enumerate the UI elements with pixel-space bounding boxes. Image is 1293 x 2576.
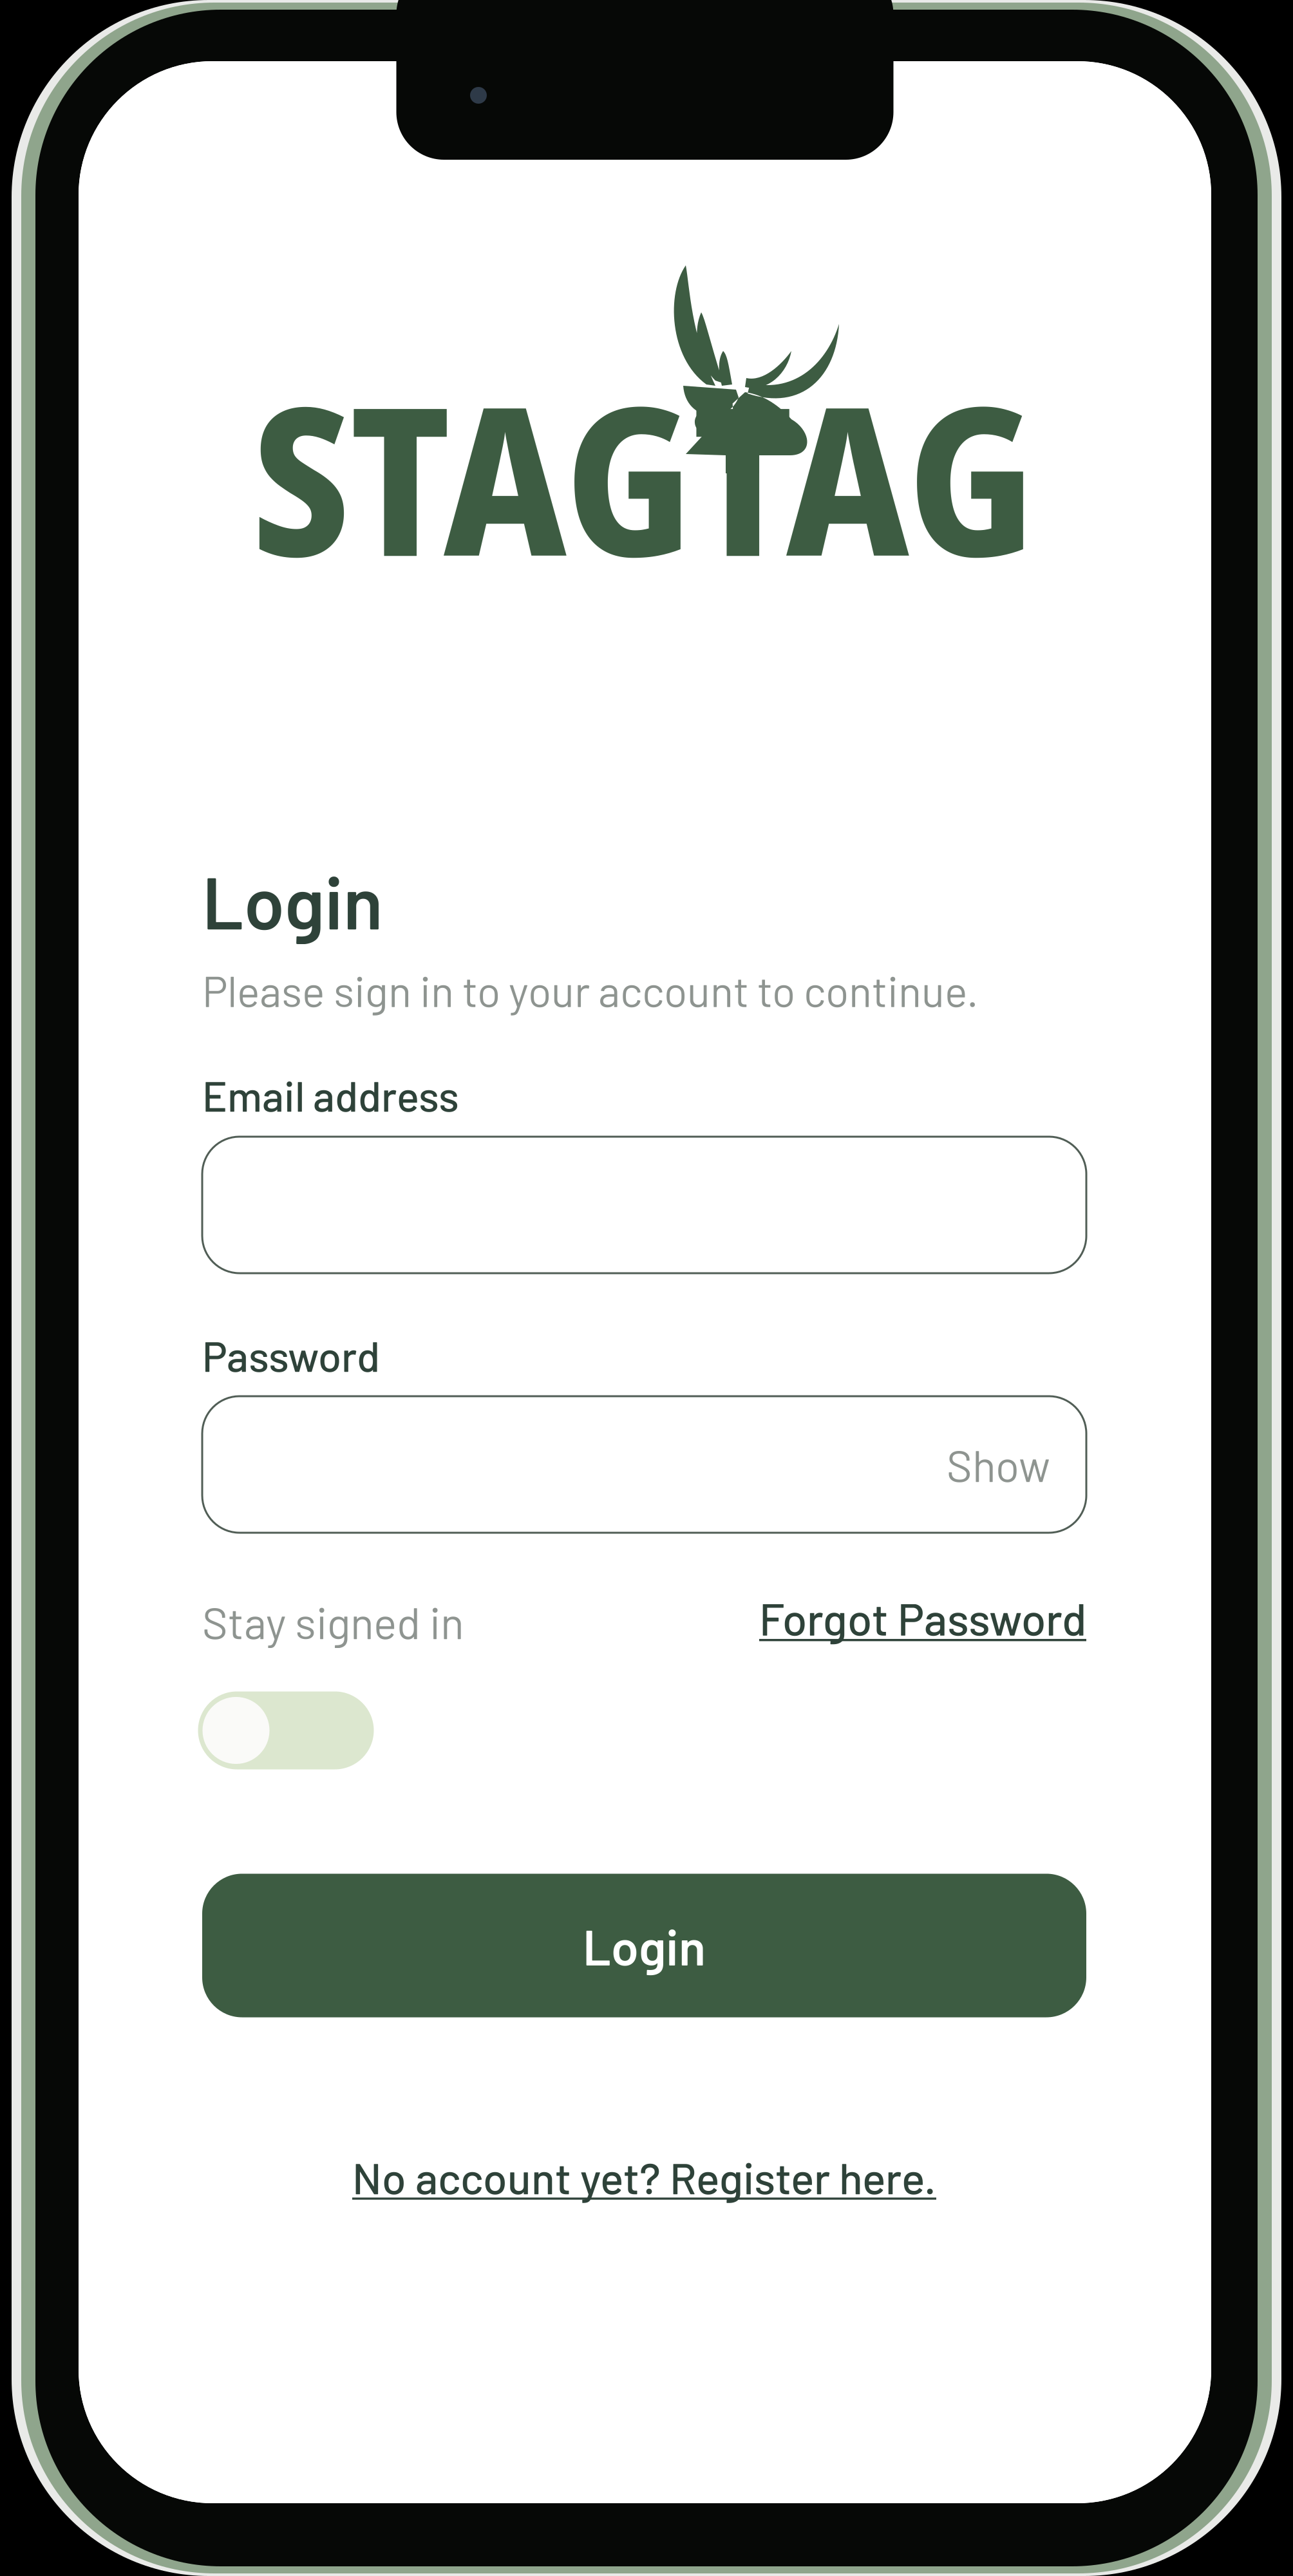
staticText: Forgot Password xyxy=(759,1591,1086,1645)
staticText: Login xyxy=(202,857,383,944)
staticText: STAGTAG xyxy=(252,336,1035,616)
staticText: No account yet? Register here. xyxy=(352,2150,936,2203)
staticText: Show xyxy=(947,1438,1050,1491)
staticText: Login xyxy=(583,1916,706,1975)
button[interactable]: No account yet? Register here. xyxy=(202,2150,1086,2203)
button[interactable]: Forgot Password xyxy=(202,1591,1086,1645)
button[interactable]: Login xyxy=(202,1874,1086,2017)
staticText: Stay signed in xyxy=(202,1595,464,1648)
staticText: Password xyxy=(202,1330,380,1380)
button[interactable]: Stay signed in xyxy=(198,1691,374,1769)
staticText: Please sign in to your account to contin… xyxy=(202,964,979,1016)
staticText: Email address xyxy=(202,1070,459,1120)
